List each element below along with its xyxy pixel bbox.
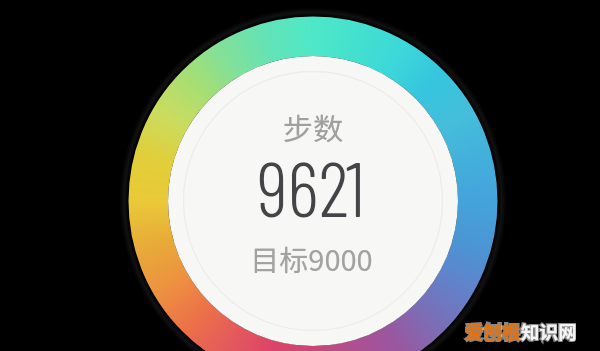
staticText: 爱刨根 — [465, 318, 521, 345]
staticText: 爱刨根知识网 — [465, 318, 577, 345]
staticText: 9621 — [257, 140, 365, 232]
staticText: 知识网 — [521, 318, 577, 345]
staticText: 步数 — [283, 105, 343, 148]
staticText: 目标9000 — [250, 237, 373, 279]
button[interactable]: Step count 9621 of 9000 goal — [168, 56, 458, 346]
